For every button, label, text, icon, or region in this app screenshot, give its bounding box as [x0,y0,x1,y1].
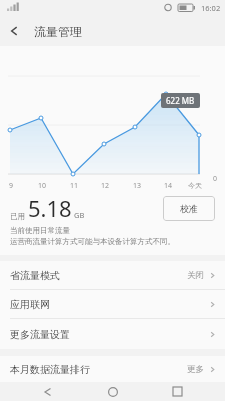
staticText: 更多流量设置 [10,328,70,341]
staticText: 本月数据流量排行 [10,363,90,376]
staticText: 省流量模式 [10,269,60,282]
staticText: 流量管理 [34,24,82,39]
button[interactable]: 校准 [163,196,215,221]
staticText: GB [74,210,85,220]
staticText: 更多 [187,364,204,375]
staticText: 14 [164,181,173,191]
button[interactable]: 应用联网 [0,290,225,319]
staticText: 11 [70,181,79,191]
staticText: 9 [9,181,14,191]
staticText: 今天 [188,181,202,190]
button[interactable]: 省流量模式 [0,261,225,290]
staticText: 运营商流量计算方式可能与本设备计算方式不同。 [10,237,175,246]
staticText: 关闭 [187,270,204,281]
staticText: 应用联网 [10,298,50,311]
staticText: 校准 [180,203,198,214]
staticText: 16:02 [201,3,221,13]
button[interactable]: Home [96,382,130,401]
staticText: 当前使用日常流量 [10,226,70,235]
staticText: 12 [101,181,110,191]
button[interactable]: 更多流量设置 [0,319,225,349]
button[interactable]: Recents [160,382,194,401]
staticText: 13 [133,181,142,191]
button[interactable]: Back [0,16,30,46]
staticText: 622 MB [166,95,195,106]
staticText: 5.18 [28,193,72,223]
staticText: 10 [38,181,47,191]
staticText: 已用 [10,212,25,221]
button[interactable]: 本月数据流量排行 [0,356,225,382]
staticText: 0 [213,174,218,184]
button[interactable]: Back [31,382,65,401]
